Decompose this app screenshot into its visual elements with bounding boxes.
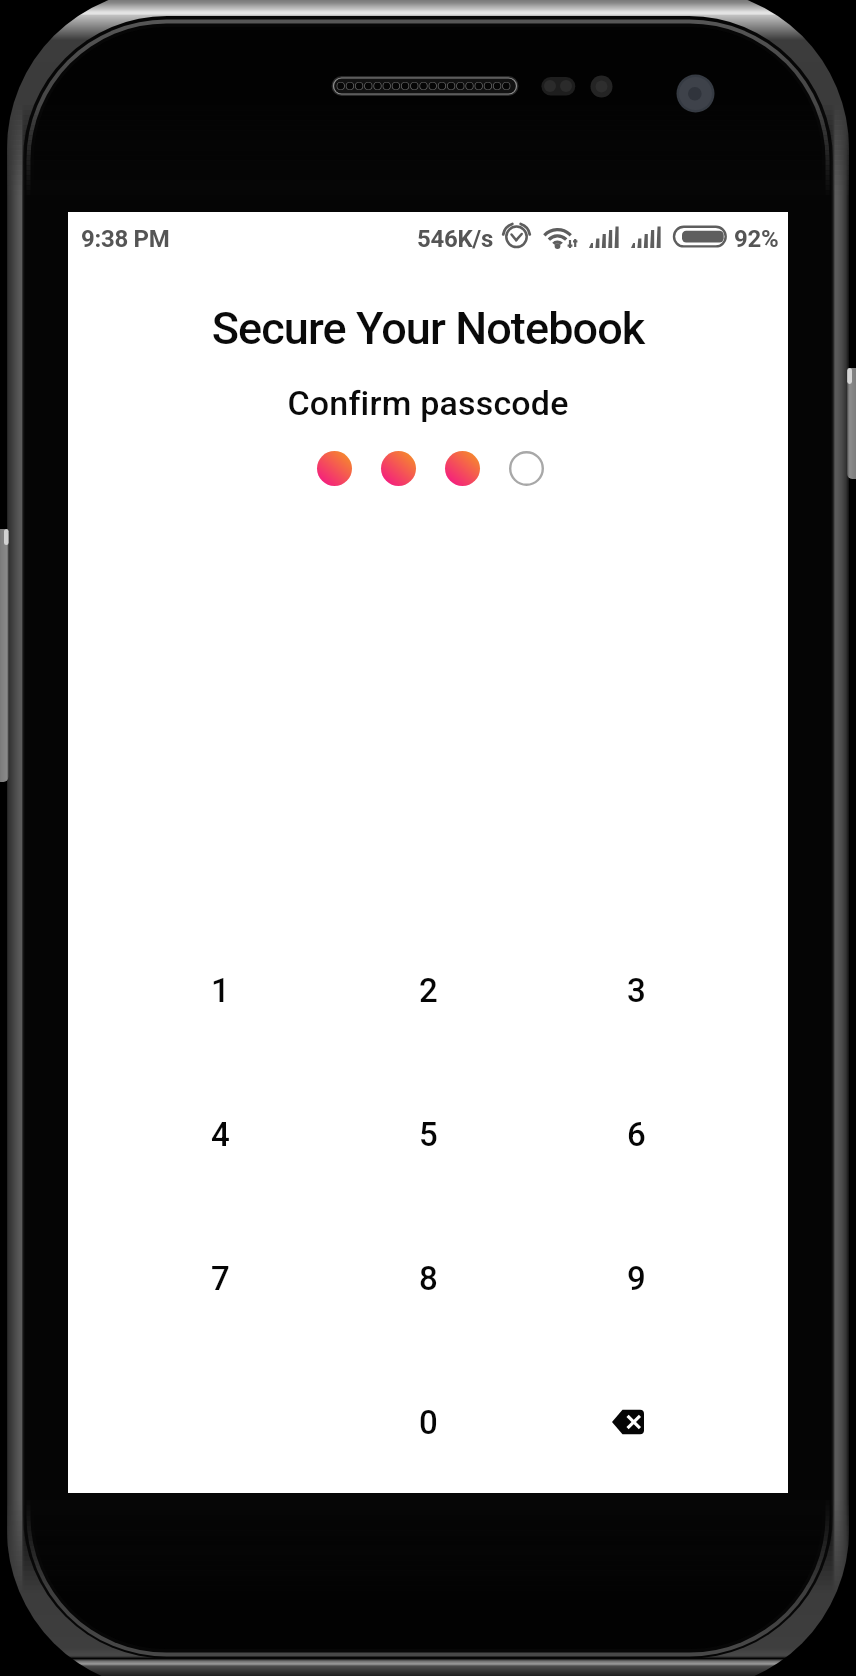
button[interactable]: 6 bbox=[532, 1062, 740, 1206]
button[interactable]: 4 bbox=[116, 1062, 324, 1206]
staticText: 8 bbox=[419, 1259, 438, 1298]
staticText: 7 bbox=[211, 1259, 230, 1298]
staticText: Confirm passcode bbox=[68, 383, 788, 423]
button[interactable]: Backspace bbox=[532, 1350, 740, 1494]
button[interactable]: 9 bbox=[532, 1206, 740, 1350]
staticText: 2 bbox=[419, 971, 438, 1010]
button[interactable]: 0 bbox=[324, 1350, 532, 1494]
staticText: 4 bbox=[211, 1115, 230, 1154]
staticText: 546K/s bbox=[417, 225, 494, 253]
staticText: 6 bbox=[627, 1115, 646, 1154]
other: Backspace bbox=[606, 1400, 650, 1444]
staticText: 1 bbox=[211, 971, 230, 1010]
button[interactable]: 2 bbox=[324, 918, 532, 1062]
staticText: 9 bbox=[627, 1259, 646, 1298]
staticText: 92% bbox=[734, 225, 779, 253]
button[interactable]: 8 bbox=[324, 1206, 532, 1350]
staticText: 3 bbox=[627, 971, 646, 1010]
staticText: 9:38 PM bbox=[81, 225, 170, 253]
button[interactable]: 3 bbox=[532, 918, 740, 1062]
staticText: 5 bbox=[419, 1115, 438, 1154]
button[interactable] bbox=[116, 1350, 324, 1494]
staticText: Secure Your Notebook bbox=[68, 302, 788, 355]
button[interactable]: 1 bbox=[116, 918, 324, 1062]
button[interactable]: 7 bbox=[116, 1206, 324, 1350]
staticText: 0 bbox=[419, 1403, 438, 1442]
button[interactable]: 5 bbox=[324, 1062, 532, 1206]
